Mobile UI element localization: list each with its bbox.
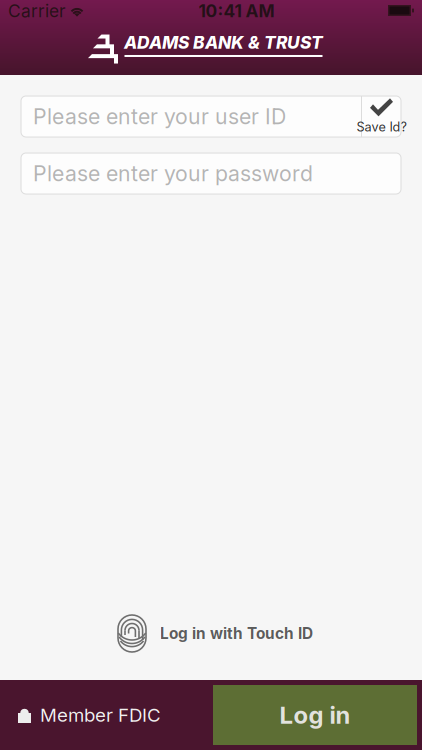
staticText: Save Id? bbox=[356, 119, 406, 135]
staticText: Please enter your user ID bbox=[33, 104, 286, 129]
staticText: Carrier bbox=[8, 0, 66, 21]
staticText: Log in with Touch ID bbox=[160, 624, 313, 643]
staticText: Log in bbox=[279, 700, 350, 729]
button[interactable]: Log in with Touch ID bbox=[109, 609, 313, 658]
staticText: ADAMS BANK & TRUST bbox=[124, 32, 323, 53]
button[interactable]: Save Id? bbox=[361, 96, 401, 137]
button[interactable]: Log in bbox=[213, 685, 417, 745]
staticText: 10:41 AM bbox=[198, 0, 274, 21]
staticText: Member FDIC bbox=[40, 704, 161, 726]
staticText: Please enter your password bbox=[33, 161, 313, 186]
